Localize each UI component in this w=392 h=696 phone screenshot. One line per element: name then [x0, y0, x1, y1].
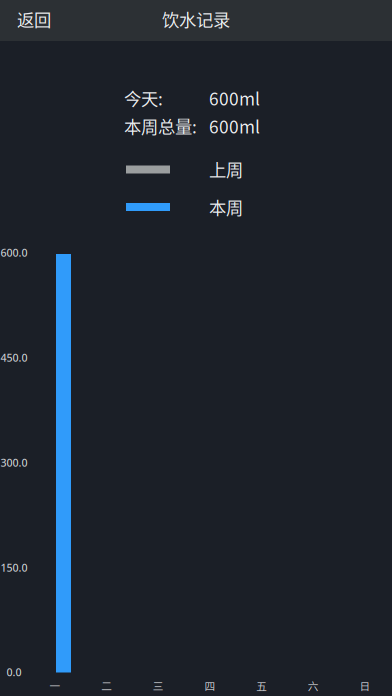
staticText: 本周总量: — [124, 113, 197, 139]
staticText: 五 — [256, 678, 267, 693]
staticText: 一 — [49, 678, 60, 693]
staticText: 600ml — [209, 85, 260, 111]
staticText: 日 — [359, 678, 370, 693]
staticText: 600.0 — [0, 245, 27, 260]
button[interactable]: 返回 — [0, 0, 80, 39]
staticText: 600ml — [209, 113, 260, 139]
staticText: 150.0 — [0, 560, 27, 575]
staticText: 300.0 — [0, 455, 27, 470]
staticText: 二 — [101, 678, 112, 693]
staticText: 返回 — [17, 6, 51, 32]
staticText: 上周 — [209, 156, 243, 182]
staticText: 今天: — [124, 85, 163, 111]
staticText: 四 — [204, 678, 215, 693]
staticText: 0.0 — [6, 665, 21, 679]
staticText: 本周 — [209, 194, 243, 220]
staticText: 六 — [308, 678, 319, 693]
staticText: 450.0 — [0, 350, 27, 365]
staticText: 饮水记录 — [162, 6, 230, 32]
staticText: 三 — [153, 678, 164, 693]
